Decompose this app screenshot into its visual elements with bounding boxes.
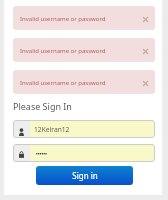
button[interactable]: 12Keiran12 xyxy=(13,120,155,138)
button[interactable] xyxy=(13,144,155,162)
button[interactable]: Sign in xyxy=(36,166,133,185)
staticText: Sign in xyxy=(72,170,98,181)
staticText: Invalid username or password xyxy=(20,79,106,87)
staticText: 12Keiran12 xyxy=(34,125,70,134)
staticText: Invalid username or password xyxy=(20,47,106,55)
button[interactable]: Invalid username or password xyxy=(13,38,155,62)
button[interactable]: Close alert xyxy=(141,79,150,88)
staticText: Please Sign In xyxy=(13,100,72,112)
button[interactable]: Invalid username or password xyxy=(13,6,155,30)
staticText: Invalid username or password xyxy=(20,15,106,23)
button[interactable]: Close alert xyxy=(141,47,150,56)
button[interactable]: Invalid username or password xyxy=(13,70,155,94)
button[interactable]: Close alert xyxy=(141,15,150,24)
